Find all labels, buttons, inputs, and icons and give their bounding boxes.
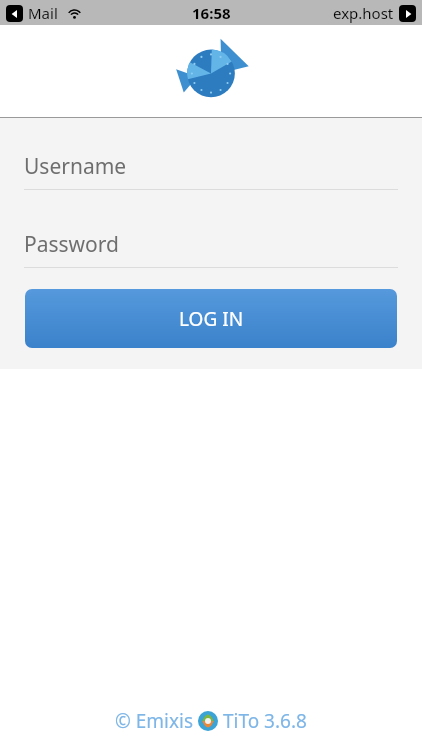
- button[interactable]: Back to Mail: [6, 5, 23, 22]
- staticText: LOG IN: [179, 306, 244, 332]
- button[interactable]: Open exp.host: [399, 5, 416, 22]
- staticText: © Emixis: [115, 708, 198, 734]
- button[interactable]: LOG IN: [25, 289, 397, 348]
- staticText: Password: [24, 230, 119, 259]
- staticText: 16:58: [192, 3, 231, 23]
- button[interactable]: Password: [24, 229, 398, 268]
- button[interactable]: Username: [24, 151, 398, 190]
- staticText: Mail: [28, 3, 58, 23]
- staticText: Username: [24, 152, 127, 181]
- staticText: exp.host: [333, 3, 394, 23]
- staticText: TiTo 3.6.8: [218, 708, 307, 734]
